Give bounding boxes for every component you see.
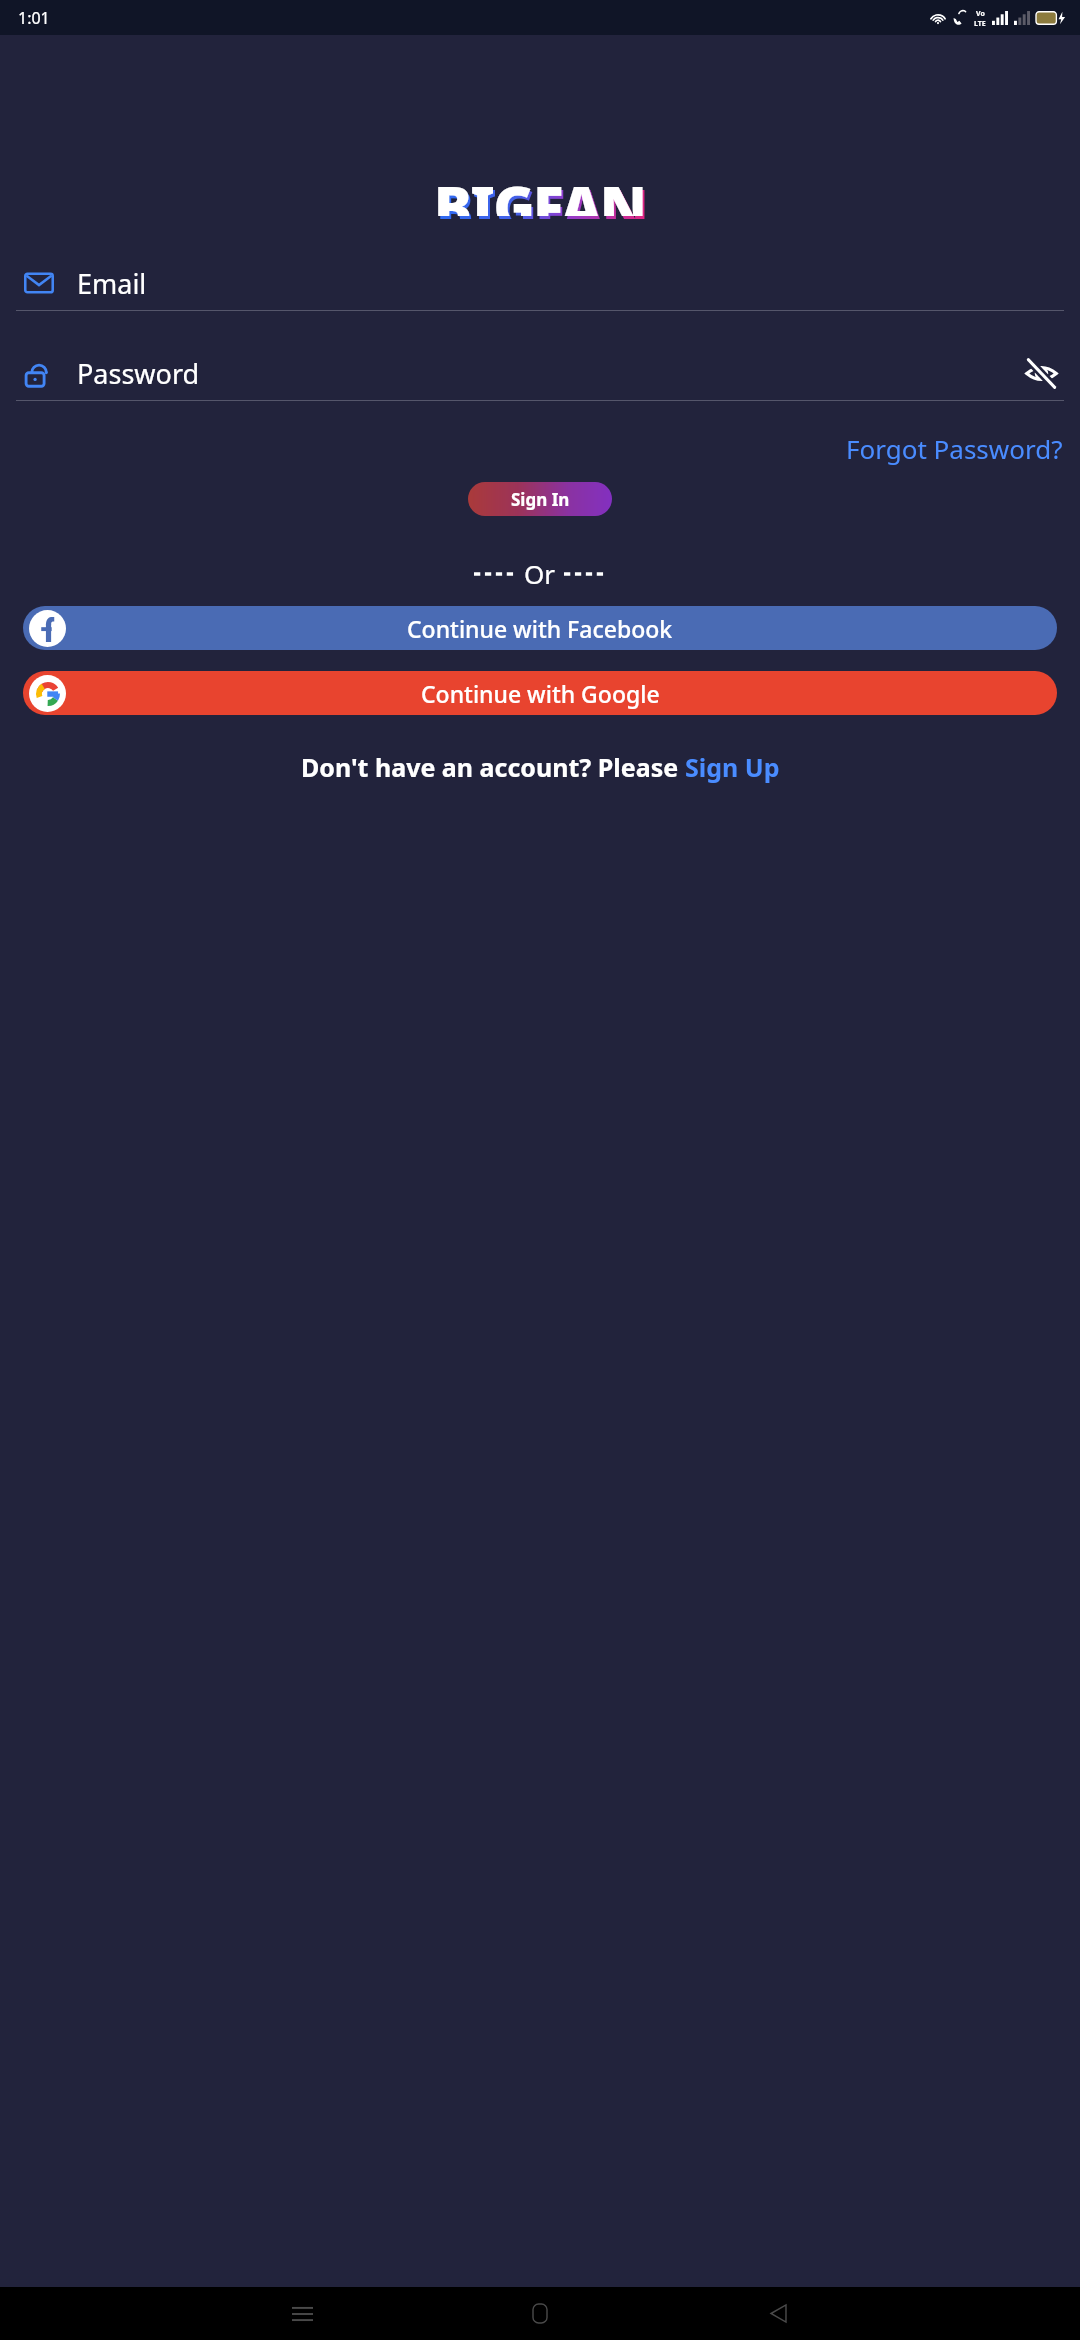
- staticText: Continue with Facebook: [407, 613, 673, 644]
- button[interactable]: Continue with Google: [23, 671, 1057, 715]
- button[interactable]: Email: [16, 256, 1064, 311]
- button[interactable]: Sign In: [468, 482, 612, 516]
- button[interactable]: Home: [513, 2287, 567, 2340]
- staticText: Sign Up: [685, 750, 780, 784]
- staticText: BIGFAN: [436, 171, 648, 219]
- staticText: Continue with Google: [421, 678, 660, 709]
- button[interactable]: Back: [751, 2287, 805, 2340]
- staticText: Vo: [976, 9, 985, 19]
- button[interactable]: Forgot Password?: [829, 425, 1080, 472]
- staticText: Password: [77, 355, 200, 392]
- button[interactable]: Sign Up: [685, 750, 780, 784]
- staticText: LTE: [974, 19, 986, 27]
- staticText: BIGFAN: [434, 168, 646, 216]
- staticText: Or: [524, 556, 556, 591]
- staticText: 1:01: [18, 7, 50, 29]
- button[interactable]: Show password: [1018, 350, 1064, 396]
- button[interactable]: Continue with Facebook: [23, 606, 1057, 650]
- staticText: Forgot Password?: [846, 431, 1063, 466]
- staticText: Sign In: [511, 488, 570, 511]
- staticText: Don't have an account? Please: [301, 750, 685, 784]
- button[interactable]: Recent apps: [275, 2287, 329, 2340]
- button[interactable]: Password: [16, 346, 1064, 401]
- staticText: Email: [77, 265, 147, 302]
